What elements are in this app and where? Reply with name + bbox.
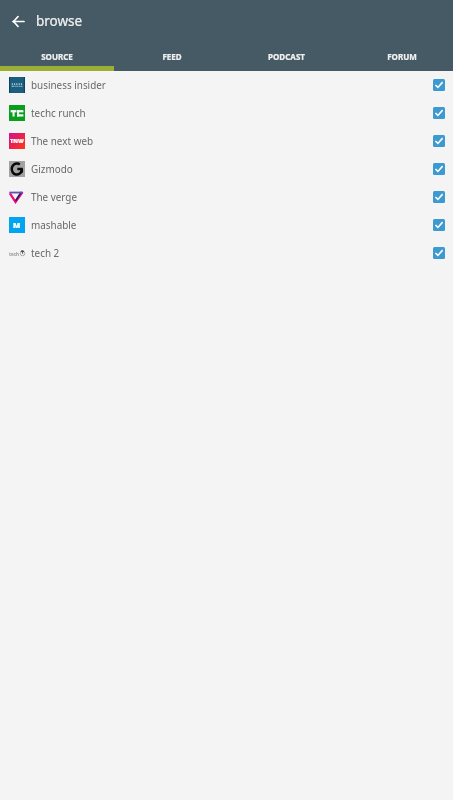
button[interactable]: M [0, 211, 453, 239]
button[interactable]: Subscribed to The next web [433, 135, 445, 147]
staticText: FORUM [387, 51, 417, 62]
button[interactable]: FORUM [344, 42, 453, 71]
staticText: business insider [31, 78, 106, 91]
button[interactable]: Subscribed to mashable [433, 219, 445, 231]
button[interactable]: FEED [114, 42, 229, 71]
staticText: mashable [31, 218, 77, 231]
button[interactable]: Subscribed to business insider [433, 79, 445, 91]
staticText: techc runch [31, 106, 86, 119]
staticText: SOURCE [41, 51, 73, 62]
staticText: browse [36, 12, 83, 30]
staticText: TNW [10, 137, 24, 145]
button[interactable]: The verge [0, 183, 453, 211]
staticText: FEED [162, 51, 182, 62]
staticText: The next web [31, 134, 94, 147]
staticText: Gizmodo [31, 162, 73, 175]
button[interactable]: Subscribed to techc runch [433, 107, 445, 119]
button[interactable]: SOURCE [0, 42, 114, 71]
button[interactable]: Gizmodo [0, 155, 453, 183]
button[interactable]: business insider [0, 71, 453, 99]
staticText: tech [9, 251, 20, 257]
button[interactable]: Subscribed to The verge [433, 191, 445, 203]
button[interactable]: Subscribed to tech 2 [433, 247, 445, 259]
button[interactable]: TNW [0, 127, 453, 155]
button[interactable]: PODCAST [229, 42, 344, 71]
staticText: PODCAST [268, 51, 305, 62]
button[interactable]: Subscribed to Gizmodo [433, 163, 445, 175]
button[interactable]: techc runch [0, 99, 453, 127]
staticText: M [13, 220, 21, 230]
button[interactable]: Back [0, 0, 36, 42]
staticText: tech 2 [31, 246, 60, 259]
staticText: The verge [31, 190, 78, 203]
button[interactable]: tech [0, 239, 453, 267]
